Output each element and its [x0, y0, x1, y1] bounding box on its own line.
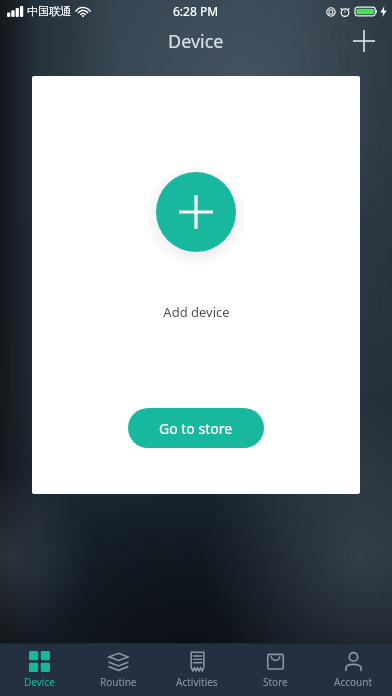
staticText: 6:28 PM	[173, 3, 219, 19]
staticText: Store	[263, 675, 288, 689]
staticText: 中国联通	[27, 4, 71, 18]
staticText: Activities	[176, 675, 218, 689]
staticText: Add device	[163, 303, 230, 321]
button[interactable]: Account	[314, 644, 392, 696]
staticText: Account	[334, 675, 373, 689]
button[interactable]: Routine	[79, 644, 158, 696]
staticText: Device	[24, 675, 55, 689]
staticText: Go to store	[159, 419, 233, 438]
button[interactable]: Device	[0, 644, 79, 696]
staticText: Routine	[100, 675, 137, 689]
button[interactable]: Activities	[158, 644, 236, 696]
button[interactable]: Add device	[344, 22, 384, 60]
button[interactable]: Add device	[156, 172, 236, 252]
button[interactable]: Store	[236, 644, 314, 696]
staticText: Device	[168, 29, 224, 54]
button[interactable]: Go to store	[128, 408, 264, 448]
